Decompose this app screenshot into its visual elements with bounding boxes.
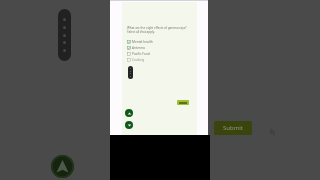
button[interactable]: Tool palette [58,9,71,61]
button[interactable]: Scroll up [125,109,133,117]
staticText: What are the eight effects of gamma rays… [127,26,188,34]
button[interactable]: Antenna [127,45,188,51]
staticText: Cooking [132,58,145,62]
staticText: Mental health [132,40,153,44]
staticText: Antenna [132,46,145,50]
button[interactable]: Scroll down [125,121,133,129]
button[interactable]: Submit [214,121,252,135]
button[interactable] [177,100,189,105]
staticText: Submit [223,124,244,132]
button[interactable]: Pacific Food [127,51,188,57]
button[interactable]: Navigate home [51,155,74,178]
button[interactable]: Mini palette [128,66,133,79]
button[interactable]: Cooking [127,57,188,63]
button[interactable]: Mental health [127,39,188,45]
staticText: Pacific Food [132,52,150,56]
